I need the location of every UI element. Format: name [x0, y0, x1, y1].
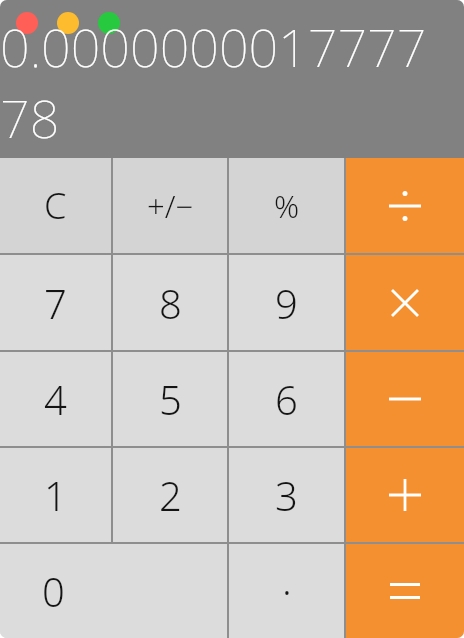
- staticText: 4: [44, 372, 67, 426]
- staticText: C: [44, 181, 67, 230]
- button[interactable]: Maximize window: [98, 12, 120, 34]
- button[interactable]: 9: [229, 255, 344, 350]
- staticText: 6: [275, 372, 298, 426]
- button[interactable]: C: [0, 158, 111, 253]
- staticText: +/−: [147, 185, 194, 227]
- button[interactable]: Add: [346, 448, 464, 542]
- button[interactable]: +/−: [113, 158, 227, 253]
- button[interactable]: 7: [0, 255, 111, 350]
- staticText: 2: [159, 468, 182, 522]
- button[interactable]: Equals: [346, 544, 464, 638]
- button[interactable]: 1: [0, 448, 111, 542]
- button[interactable]: 0: [0, 544, 227, 638]
- staticText: 5: [159, 372, 182, 426]
- button[interactable]: Close window: [16, 12, 38, 34]
- button[interactable]: Minimize window: [57, 12, 79, 34]
- button[interactable]: 2: [113, 448, 227, 542]
- staticText: %: [274, 185, 300, 227]
- button[interactable]: 5: [113, 352, 227, 446]
- button[interactable]: 8: [113, 255, 227, 350]
- staticText: ·: [282, 564, 292, 618]
- staticText: 8: [159, 276, 182, 330]
- button[interactable]: ·: [229, 544, 344, 638]
- staticText: 0: [42, 564, 65, 618]
- button[interactable]: 6: [229, 352, 344, 446]
- button[interactable]: Multiply: [346, 255, 464, 350]
- staticText: 7: [44, 276, 67, 330]
- staticText: 3: [275, 468, 298, 522]
- button[interactable]: 4: [0, 352, 111, 446]
- button[interactable]: Subtract: [346, 352, 464, 446]
- staticText: 0.000000001777778: [0, 11, 438, 153]
- staticText: 1: [44, 468, 67, 522]
- staticText: 9: [275, 276, 298, 330]
- button[interactable]: %: [229, 158, 344, 253]
- button[interactable]: Divide: [346, 158, 464, 253]
- button[interactable]: 3: [229, 448, 344, 542]
